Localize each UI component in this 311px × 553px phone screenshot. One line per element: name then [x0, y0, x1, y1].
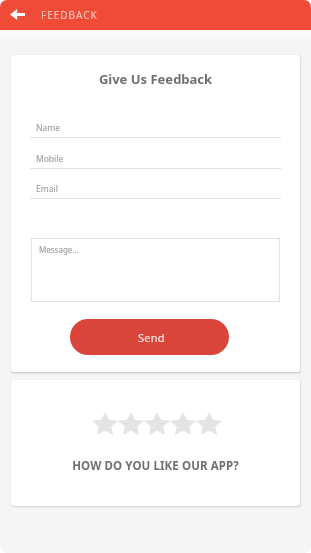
- staticText: Email: [36, 183, 58, 195]
- staticText: Name: [36, 122, 60, 134]
- button[interactable]: Rate 1 stars: [92, 412, 118, 435]
- button[interactable]: Rate 4 stars: [170, 412, 196, 435]
- button[interactable]: Rate 3 stars: [144, 412, 170, 435]
- button[interactable]: Rate 2 stars: [118, 412, 144, 435]
- button[interactable]: Email: [30, 176, 281, 202]
- button[interactable]: Back: [4, 1, 30, 27]
- staticText: FEEDBACK: [41, 8, 98, 22]
- staticText: Message...: [39, 244, 79, 255]
- button[interactable]: Message...: [31, 238, 280, 302]
- button[interactable]: Mobile: [30, 146, 281, 172]
- button[interactable]: Name: [30, 115, 281, 141]
- staticText: Mobile: [36, 153, 64, 165]
- button[interactable]: Rate 5 stars: [196, 412, 222, 435]
- staticText: Give Us Feedback: [11, 70, 300, 88]
- staticText: HOW DO YOU LIKE OUR APP?: [11, 458, 300, 474]
- button[interactable]: Send: [70, 319, 229, 355]
- staticText: Send: [138, 330, 165, 345]
